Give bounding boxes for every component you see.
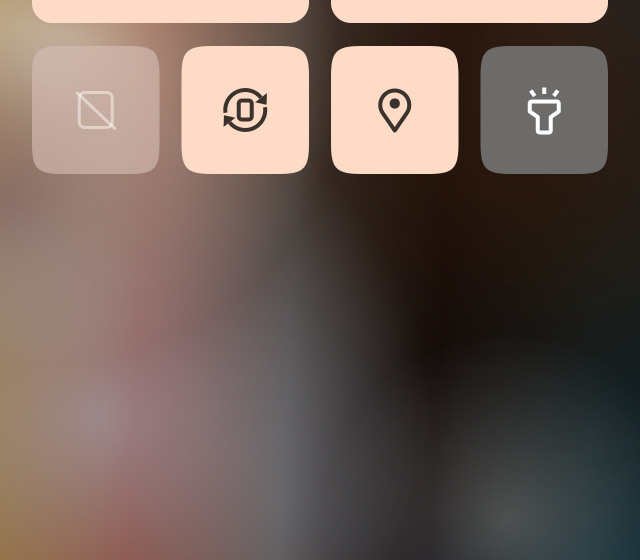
button[interactable]: Connectivity <box>32 0 309 23</box>
button[interactable]: Screen Rotation <box>181 46 309 174</box>
button[interactable]: Location <box>331 46 458 174</box>
button[interactable]: Rotation Lock <box>32 46 159 174</box>
button[interactable]: Flashlight <box>480 46 608 174</box>
button[interactable]: Media and Display <box>331 0 608 23</box>
